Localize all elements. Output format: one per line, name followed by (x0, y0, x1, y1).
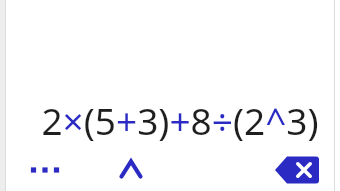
staticText: 17 (311, 183, 340, 191)
staticText: 2×(5+3)+8÷(2^3) (41, 95, 319, 145)
button[interactable]: More options (22, 152, 68, 186)
button[interactable]: Backspace (268, 151, 326, 189)
button[interactable]: Exponent (110, 150, 152, 188)
